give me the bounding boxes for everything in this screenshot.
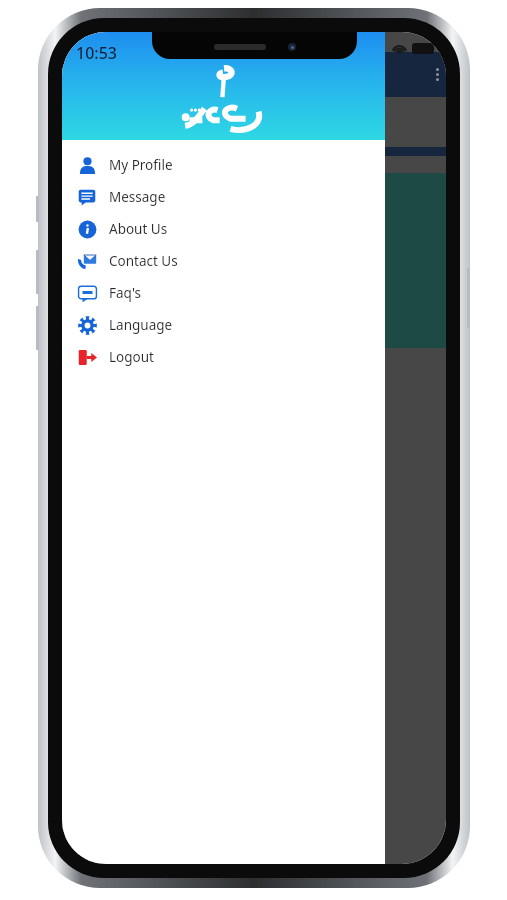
staticText: Contact Us (109, 252, 178, 270)
staticText: My Profile (109, 156, 173, 174)
staticText: Language (109, 316, 173, 334)
button[interactable]: About Us (62, 213, 385, 245)
staticText: up (64, 299, 85, 322)
button[interactable]: Language (62, 309, 385, 341)
staticText: Message (109, 188, 166, 206)
staticText: Logout (109, 348, 154, 366)
button[interactable]: Contact Us (62, 245, 385, 277)
button[interactable]: Message (62, 181, 385, 213)
button[interactable]: Logout (62, 341, 385, 373)
button[interactable]: My Profile (62, 149, 385, 181)
staticText: 10:53 (76, 42, 117, 64)
staticText: About Us (109, 220, 168, 238)
staticText: Faq's (109, 284, 141, 302)
button[interactable]: Faq's (62, 277, 385, 309)
